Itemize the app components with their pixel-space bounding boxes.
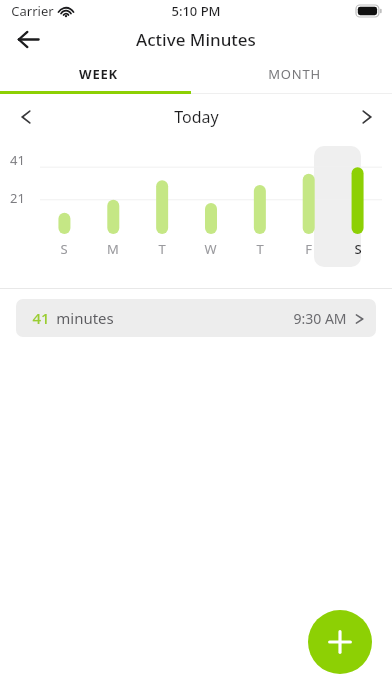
button[interactable]: Back bbox=[6, 22, 50, 57]
staticText: MONTH bbox=[268, 65, 321, 83]
staticText: 41 bbox=[32, 308, 50, 328]
button[interactable]: Add bbox=[308, 610, 372, 674]
staticText: WEEK bbox=[79, 65, 118, 83]
staticText: Today bbox=[174, 106, 219, 128]
staticText: 9:30 AM bbox=[293, 309, 347, 328]
button[interactable]: Previous bbox=[6, 97, 46, 137]
button[interactable]: 41 bbox=[16, 299, 376, 337]
staticText: Carrier bbox=[11, 2, 54, 20]
staticText: 41 bbox=[10, 151, 25, 169]
staticText: M bbox=[107, 240, 119, 258]
staticText: Active Minutes bbox=[136, 28, 256, 51]
staticText: minutes bbox=[56, 308, 114, 328]
button[interactable]: Next bbox=[346, 97, 386, 137]
staticText: S bbox=[60, 240, 68, 258]
button[interactable]: MONTH bbox=[196, 57, 392, 91]
staticText: W bbox=[204, 240, 217, 258]
staticText: T bbox=[256, 240, 264, 258]
staticText: F bbox=[305, 240, 312, 258]
staticText: S bbox=[354, 240, 362, 258]
staticText: 21 bbox=[10, 189, 25, 207]
staticText: 5:10 PM bbox=[171, 2, 221, 20]
button[interactable]: WEEK bbox=[0, 57, 196, 91]
staticText: T bbox=[158, 240, 166, 258]
